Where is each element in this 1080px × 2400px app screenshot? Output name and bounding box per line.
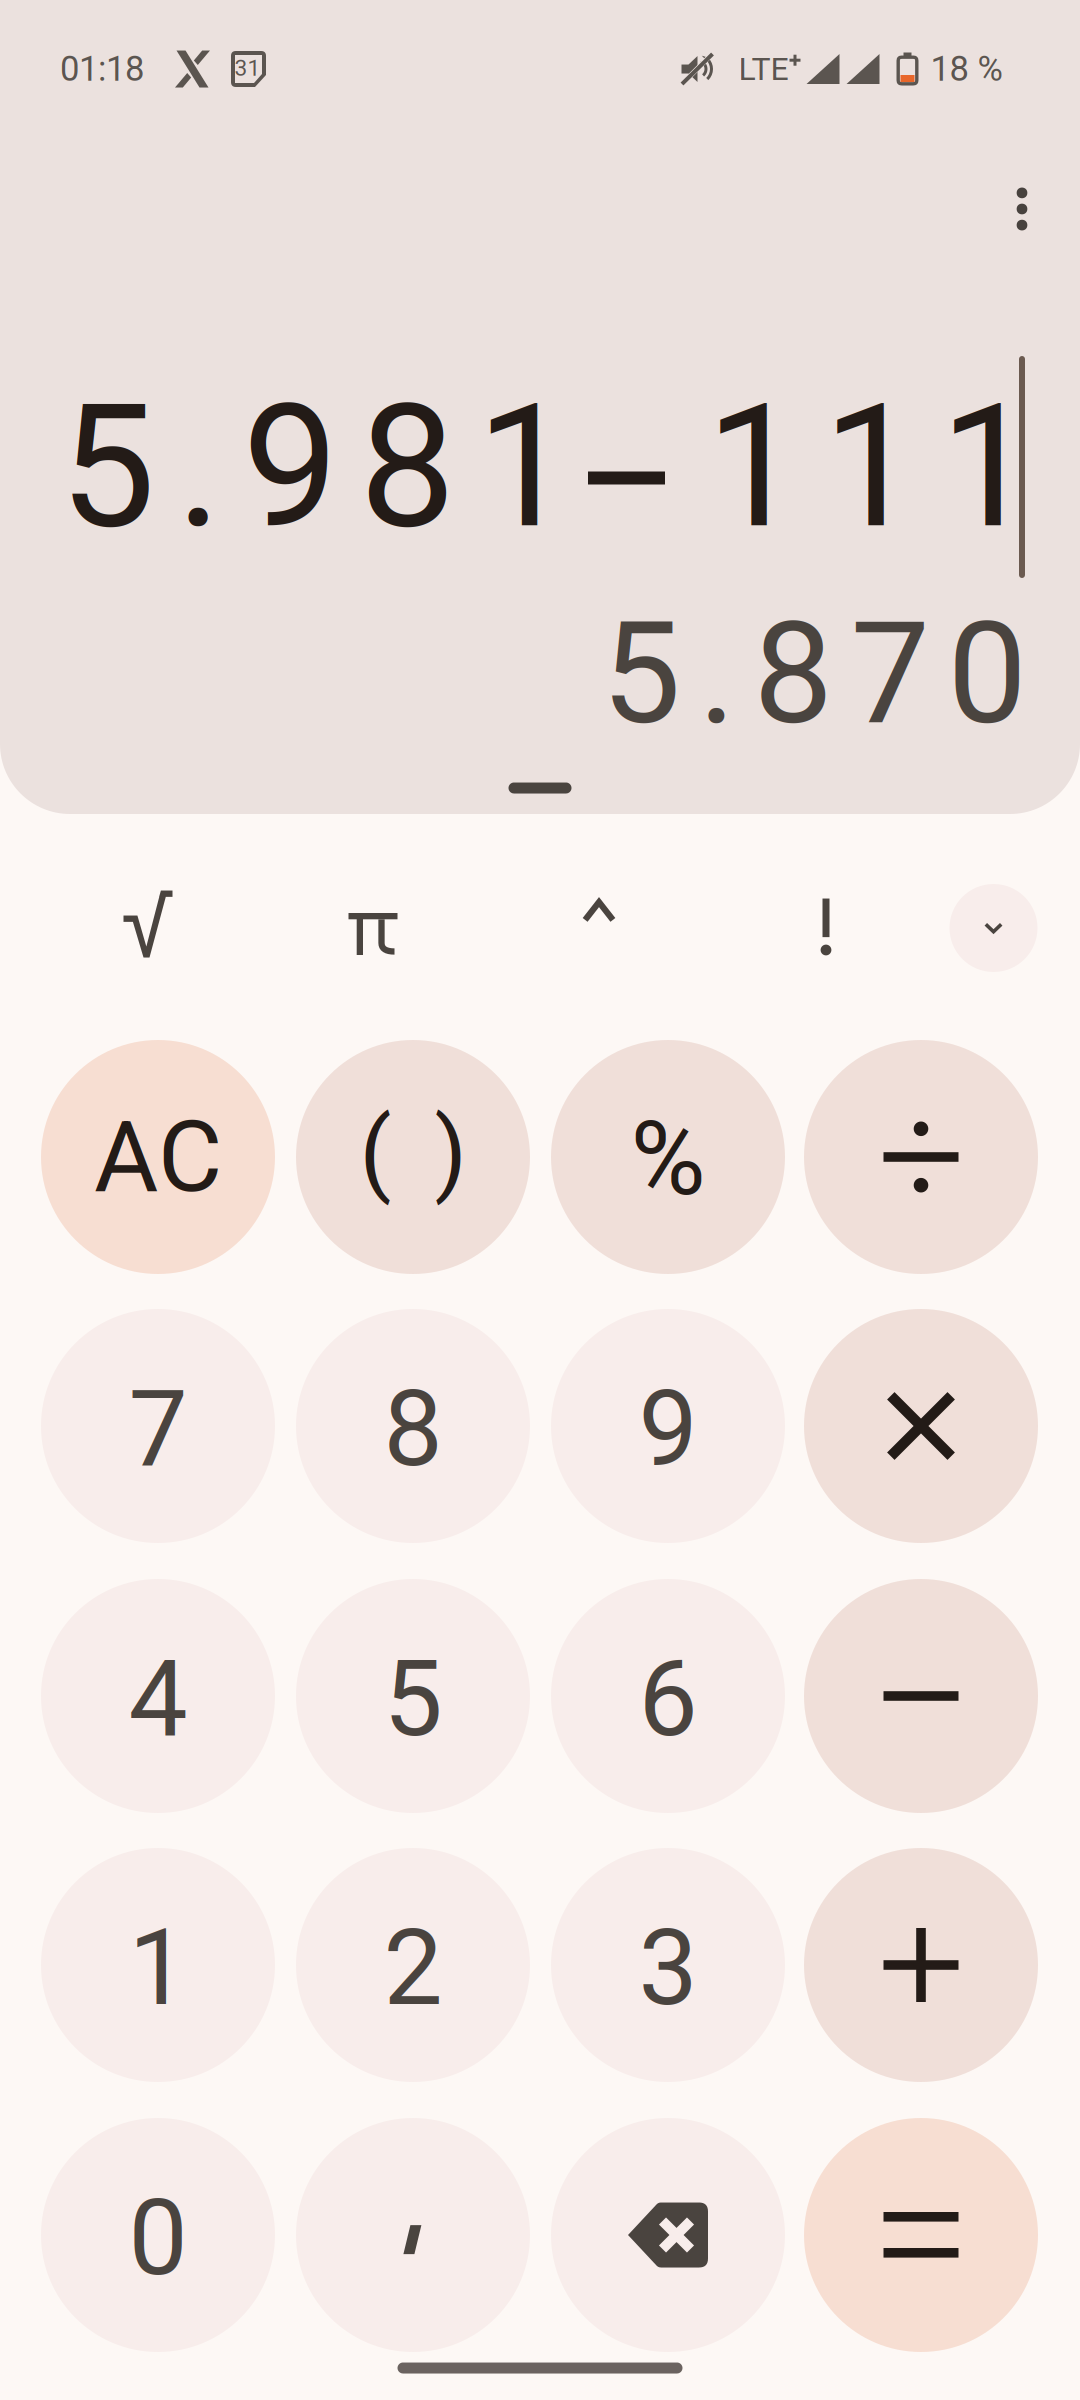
staticText: 5.870	[601, 591, 1026, 757]
staticText: 8	[383, 1367, 442, 1491]
staticText: 18 %	[930, 49, 1002, 89]
staticText: 7	[128, 1367, 187, 1491]
button[interactable]: Square root	[73, 858, 223, 990]
button[interactable]: Multiply	[804, 1309, 1038, 1543]
button[interactable]: 9	[551, 1309, 785, 1543]
button[interactable]: Equals	[804, 2118, 1038, 2352]
staticText: %	[630, 1099, 705, 1219]
staticText: 9	[638, 1367, 697, 1491]
button[interactable]: Divide	[804, 1040, 1038, 1274]
button[interactable]: More options	[982, 162, 1062, 256]
button[interactable]: 2	[296, 1848, 530, 2082]
button[interactable]: 6	[551, 1579, 785, 1813]
staticText: 0	[128, 2176, 187, 2300]
staticText: 111	[706, 367, 1036, 567]
staticText: ( )	[359, 1097, 466, 1207]
button[interactable]: Backspace	[551, 2118, 785, 2352]
button[interactable]: Minus	[804, 1579, 1038, 1813]
staticText: 5.981	[59, 367, 572, 567]
staticText: 1	[128, 1906, 187, 2030]
button[interactable]: %	[551, 1040, 785, 1274]
staticText: 2	[383, 1906, 442, 2030]
button[interactable]: Plus	[804, 1848, 1038, 2082]
button[interactable]: 1	[41, 1848, 275, 2082]
button[interactable]: 8	[296, 1309, 530, 1543]
staticText: 31	[234, 55, 260, 81]
button[interactable]: Factorial	[751, 861, 901, 993]
staticText: 5	[383, 1637, 442, 1761]
button[interactable]: Decimal point	[296, 2118, 530, 2352]
staticText: AC	[94, 1099, 222, 1215]
button[interactable]: 5	[296, 1579, 530, 1813]
staticText: 6	[638, 1637, 697, 1761]
staticText: 01:18	[60, 49, 144, 89]
button[interactable]: 4	[41, 1579, 275, 1813]
button[interactable]: AC	[41, 1040, 275, 1274]
button[interactable]: Show more functions	[949, 884, 1037, 972]
staticText: 4	[128, 1637, 187, 1761]
button[interactable]: Pi	[298, 868, 448, 1000]
staticText: 3	[638, 1906, 697, 2030]
button[interactable]: Power	[524, 845, 674, 977]
button[interactable]: ( )	[296, 1040, 530, 1274]
button[interactable]: 7	[41, 1309, 275, 1543]
staticText: LTE	[738, 50, 788, 88]
button[interactable]: 0	[41, 2118, 275, 2352]
button[interactable]: 3	[551, 1848, 785, 2082]
